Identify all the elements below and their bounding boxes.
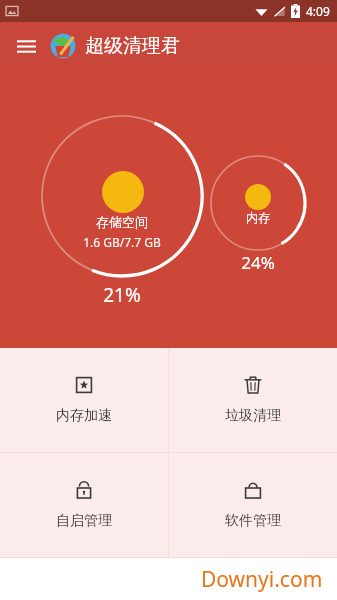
staticText: 内存 (208, 210, 308, 225)
staticText: 自启管理 (56, 512, 112, 530)
staticText: 21% (62, 282, 182, 308)
staticText: 存储空间 (96, 214, 148, 230)
staticText: 软件管理 (225, 512, 281, 530)
staticText: 1.6 GB/7.7 GB (83, 234, 161, 250)
button[interactable]: Junk clean (169, 348, 337, 452)
staticText: 超级清理君 (85, 34, 180, 58)
button[interactable]: Memory boost (0, 348, 168, 452)
button[interactable]: Open navigation menu (11, 31, 41, 61)
button[interactable]: Autostart manager (0, 453, 168, 557)
button[interactable]: App manager (169, 453, 337, 557)
staticText: 内存加速 (56, 407, 112, 425)
staticText: 24% (208, 251, 308, 274)
staticText: 垃圾清理 (225, 407, 281, 425)
staticText: 4:09 (306, 3, 330, 19)
staticText: Downyi.com (201, 565, 323, 594)
